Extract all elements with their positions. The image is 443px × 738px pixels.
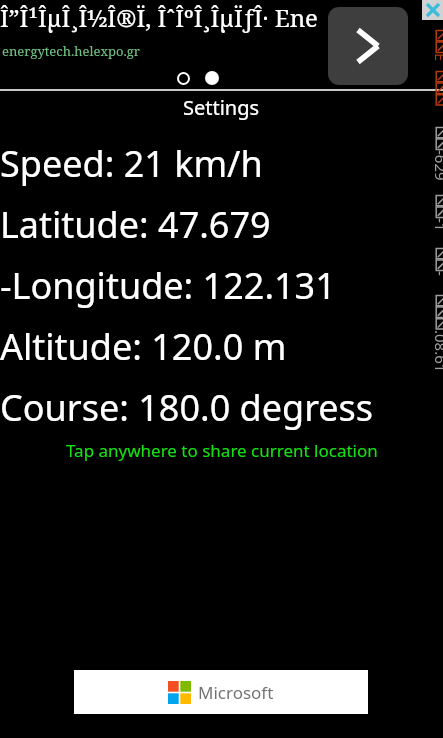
staticText: - bbox=[431, 271, 443, 276]
staticText: -629 bbox=[431, 150, 443, 181]
button[interactable]: Latitude: 47.679 bbox=[0, 200, 271, 249]
button[interactable]: Î”Î¹ÎµÎ¸Î½Î®Ï‚ ÎˆÎºÎ¸ÎµÏƒÎ· Ene bbox=[0, 0, 443, 88]
button[interactable]: Next ad bbox=[328, 7, 408, 85]
button[interactable]: Close ad bbox=[422, 0, 443, 20]
staticText: Settings bbox=[183, 94, 260, 121]
staticText: Tap anywhere to share current location bbox=[66, 439, 378, 462]
staticText: Î”Î¹ÎµÎ¸Î½Î®Ï‚ ÎˆÎºÎ¸ÎµÏƒÎ· Ene bbox=[0, 1, 318, 34]
staticText: .08.61 bbox=[431, 330, 443, 373]
button[interactable]: Speed: 21 km/h bbox=[0, 139, 263, 188]
button[interactable]: Advertisement bbox=[431, 30, 443, 390]
button[interactable] bbox=[177, 72, 190, 85]
button[interactable]: energytech.helexpo.gr bbox=[2, 42, 140, 60]
staticText: -1 bbox=[431, 218, 443, 232]
staticText: E bbox=[431, 53, 443, 62]
staticText: Microsoft bbox=[198, 681, 274, 704]
button[interactable]: Altitude: 120.0 m bbox=[0, 322, 287, 371]
button[interactable] bbox=[205, 71, 219, 85]
button[interactable]: Microsoft bbox=[74, 670, 368, 714]
button[interactable]: -Longitude: 122.131 bbox=[0, 261, 336, 310]
button[interactable]: Course: 180.0 degress bbox=[0, 383, 374, 432]
button[interactable]: Tap anywhere to share current location bbox=[0, 439, 443, 462]
